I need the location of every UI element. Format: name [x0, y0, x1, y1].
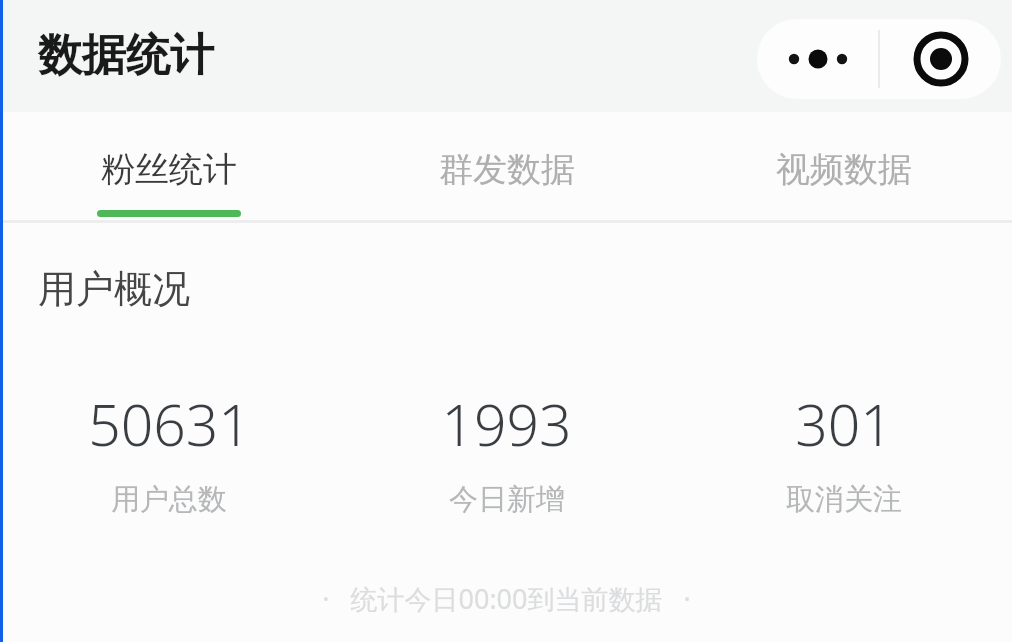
staticText: 用户概况 — [38, 265, 190, 313]
staticText: 50631 — [88, 385, 251, 463]
button[interactable]: 1993 — [338, 385, 675, 518]
staticText: 群发数据 — [439, 148, 575, 191]
button[interactable]: 50631 — [0, 385, 338, 518]
staticText: 今日新增 — [449, 481, 565, 518]
button[interactable]: 粉丝统计 — [0, 112, 338, 220]
staticText: 视频数据 — [776, 148, 912, 191]
staticText: 用户总数 — [111, 481, 227, 518]
button[interactable]: 301 — [675, 385, 1012, 518]
staticText: 301 — [795, 385, 893, 463]
staticText: 粉丝统计 — [101, 148, 237, 191]
button[interactable]: More options — [757, 19, 878, 99]
button[interactable]: 群发数据 — [338, 112, 675, 220]
button[interactable]: Close — [880, 19, 1001, 99]
staticText: · 统计今日00:00到当前数据 · — [322, 580, 691, 617]
button[interactable]: 视频数据 — [675, 112, 1012, 220]
staticText: 取消关注 — [786, 481, 902, 518]
staticText: 1993 — [441, 385, 572, 463]
staticText: 数据统计 — [38, 28, 214, 83]
